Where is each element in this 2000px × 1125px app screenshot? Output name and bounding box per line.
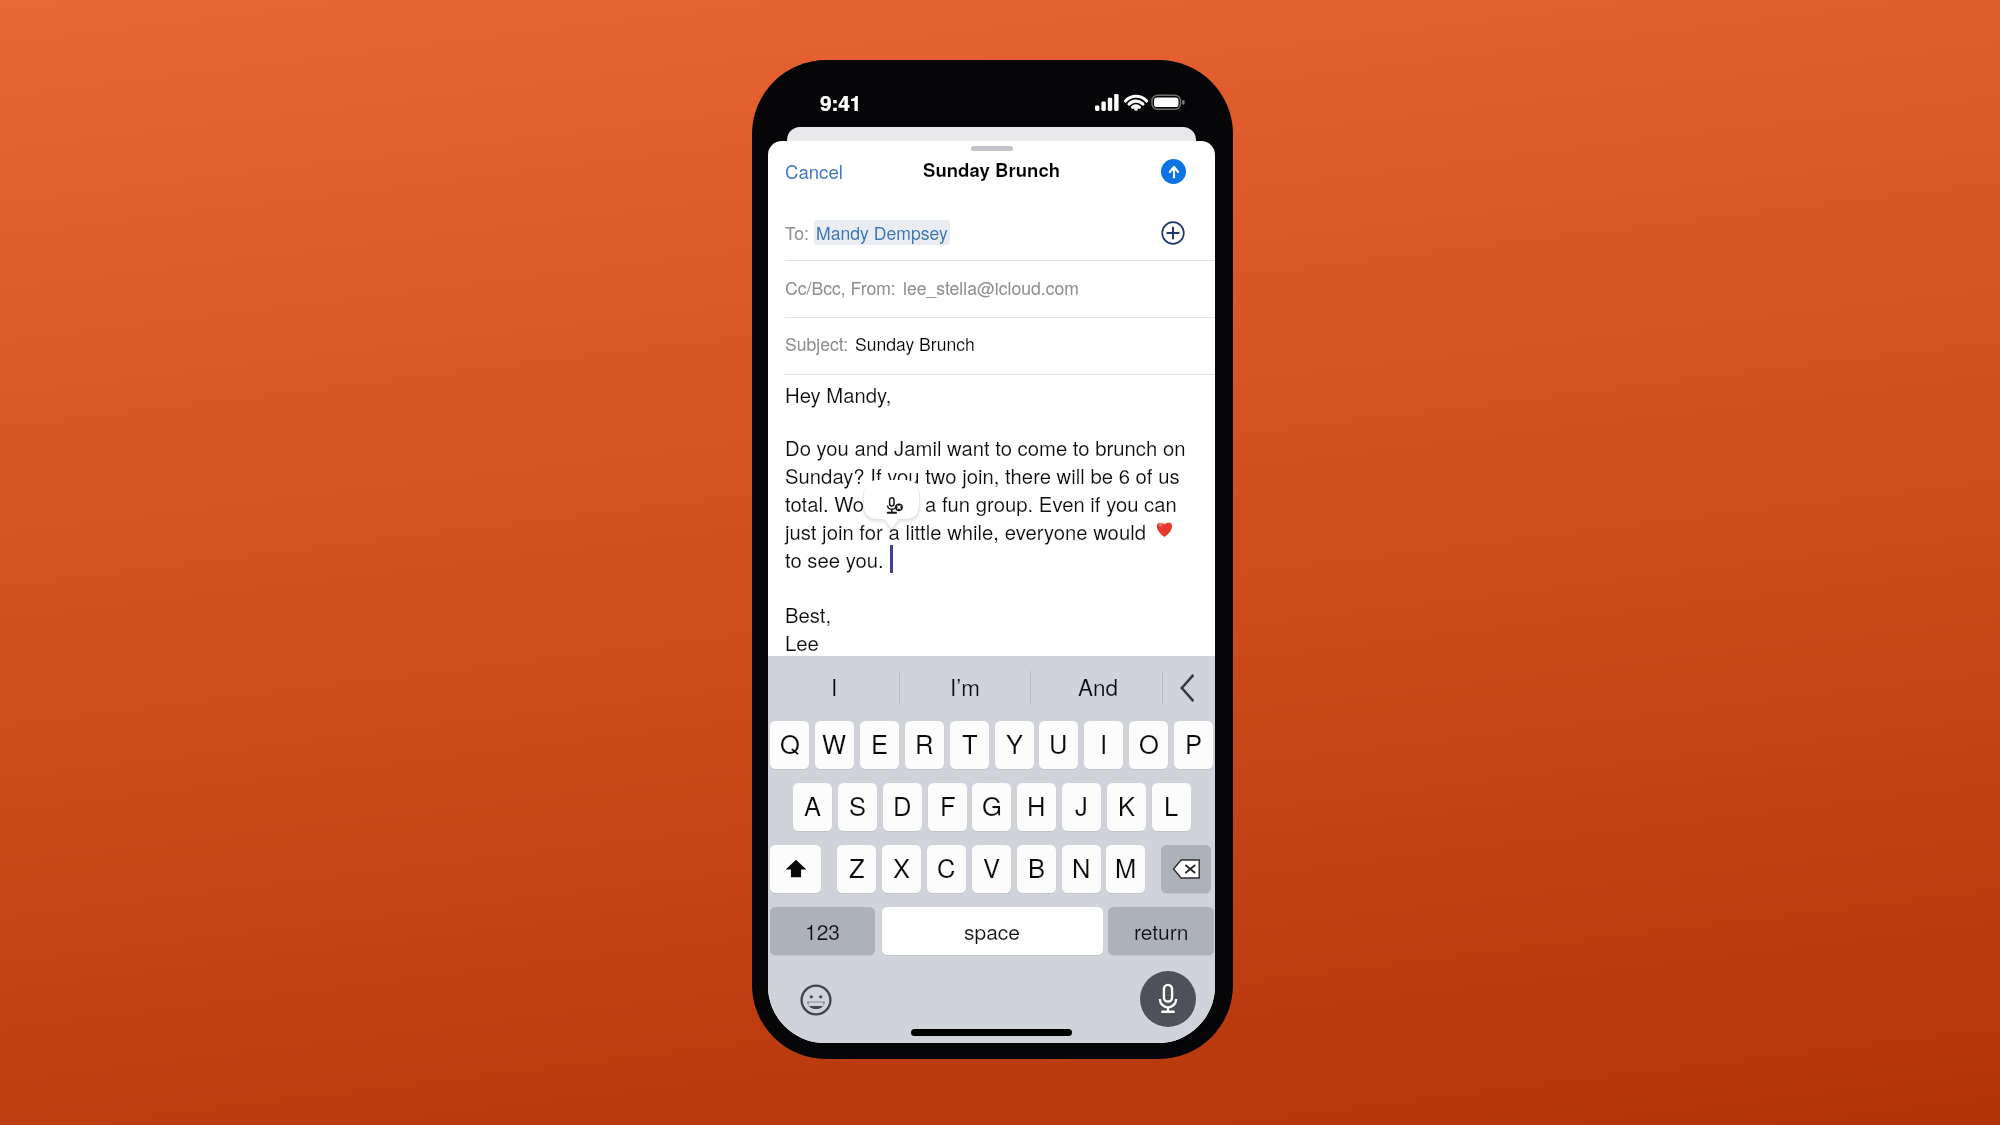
button[interactable]: W	[815, 721, 854, 769]
staticText: A	[804, 787, 822, 824]
staticText: 9:41	[820, 87, 862, 117]
button[interactable]: U	[1039, 721, 1078, 769]
staticText: Cancel	[785, 158, 843, 185]
staticText: return	[1134, 916, 1189, 946]
staticText: Best,	[785, 600, 832, 629]
button[interactable]: space	[882, 907, 1103, 955]
staticText: N	[1072, 849, 1091, 886]
button[interactable]: V	[972, 845, 1011, 893]
button[interactable]: D	[883, 783, 922, 831]
staticText: just join for a little while, everyone w…	[785, 517, 1146, 546]
button[interactable]: H	[1017, 783, 1056, 831]
staticText: K	[1118, 787, 1136, 824]
button[interactable]: E	[860, 721, 899, 769]
staticText: to see you.	[785, 545, 884, 574]
button[interactable]: I’m	[920, 662, 1010, 710]
staticText: T	[962, 725, 978, 762]
staticText: And	[1078, 670, 1119, 702]
button[interactable]: return	[1108, 907, 1214, 955]
button[interactable]: Add recipient	[1161, 221, 1185, 245]
button[interactable]: M	[1106, 845, 1145, 893]
button[interactable]: P	[1174, 721, 1213, 769]
staticText: V	[983, 849, 1001, 886]
button[interactable]: L	[1152, 783, 1191, 831]
staticText: To:	[785, 220, 809, 245]
button[interactable]: 123	[770, 907, 875, 955]
staticText: Subject:	[785, 331, 849, 356]
staticText: Sunday? If you two join, there will be 6…	[785, 461, 1180, 490]
button[interactable]: Send	[1161, 159, 1186, 184]
button[interactable]: N	[1062, 845, 1101, 893]
staticText: D	[893, 787, 912, 824]
staticText: M	[1115, 849, 1137, 886]
button[interactable]: Shift	[770, 845, 821, 893]
button[interactable]: C	[927, 845, 966, 893]
staticText: C	[937, 849, 956, 886]
staticText: B	[1028, 849, 1046, 886]
button[interactable]: Y	[995, 721, 1034, 769]
staticText: S	[849, 787, 867, 824]
button[interactable]: B	[1017, 845, 1056, 893]
button[interactable]: I	[1084, 721, 1123, 769]
button[interactable]: F	[928, 783, 967, 831]
staticText: E	[871, 725, 889, 762]
button[interactable]: S	[838, 783, 877, 831]
staticText: U	[1049, 725, 1068, 762]
staticText: F	[940, 787, 956, 824]
staticText: Hey Mandy,	[785, 380, 892, 409]
staticText: R	[915, 725, 934, 762]
button[interactable]: I	[789, 662, 879, 710]
staticText: total. Would be a fun group. Even if you…	[785, 489, 1177, 518]
staticText: Cc/Bcc, From:	[785, 275, 896, 300]
staticText: O	[1139, 725, 1159, 762]
staticText: lee_stella@icloud.com	[903, 275, 1079, 300]
staticText: Lee	[785, 628, 819, 657]
button[interactable]: Cancel	[785, 158, 843, 185]
button[interactable]: Emoji keyboard	[800, 984, 832, 1016]
staticText: 123	[805, 916, 841, 946]
button[interactable]: K	[1107, 783, 1146, 831]
staticText: W	[822, 725, 847, 762]
staticText: I	[831, 670, 838, 702]
staticText: X	[893, 849, 911, 886]
staticText: Z	[849, 849, 865, 886]
button[interactable]: O	[1129, 721, 1168, 769]
staticText: space	[964, 916, 1021, 946]
button[interactable]: Hide predictions	[1174, 671, 1201, 705]
staticText: Do you and Jamil want to come to brunch …	[785, 433, 1186, 462]
button[interactable]: J	[1062, 783, 1101, 831]
staticText: P	[1185, 725, 1203, 762]
button[interactable]: Dictate	[1140, 971, 1196, 1027]
staticText: Y	[1006, 725, 1024, 762]
button[interactable]: Z	[837, 845, 876, 893]
other: Stop dictation	[884, 495, 906, 517]
button[interactable]: R	[905, 721, 944, 769]
button[interactable]: Mandy Dempsey	[816, 220, 948, 245]
staticText: Q	[780, 725, 800, 762]
staticText: I	[1100, 725, 1108, 762]
button[interactable]: Backspace	[1161, 845, 1211, 893]
staticText: Sunday Brunch	[923, 156, 1061, 183]
button[interactable]: X	[882, 845, 921, 893]
button[interactable]: T	[950, 721, 989, 769]
button[interactable]: Q	[770, 721, 809, 769]
button[interactable]: A	[793, 783, 832, 831]
staticText: I’m	[950, 670, 980, 702]
staticText: J	[1075, 787, 1088, 824]
staticText: G	[982, 787, 1002, 824]
staticText: H	[1027, 787, 1046, 824]
button[interactable]: And	[1053, 662, 1143, 710]
staticText: L	[1164, 787, 1179, 824]
button[interactable]: G	[972, 783, 1011, 831]
staticText: Mandy Dempsey	[816, 220, 948, 245]
staticText: Sunday Brunch	[855, 331, 975, 356]
